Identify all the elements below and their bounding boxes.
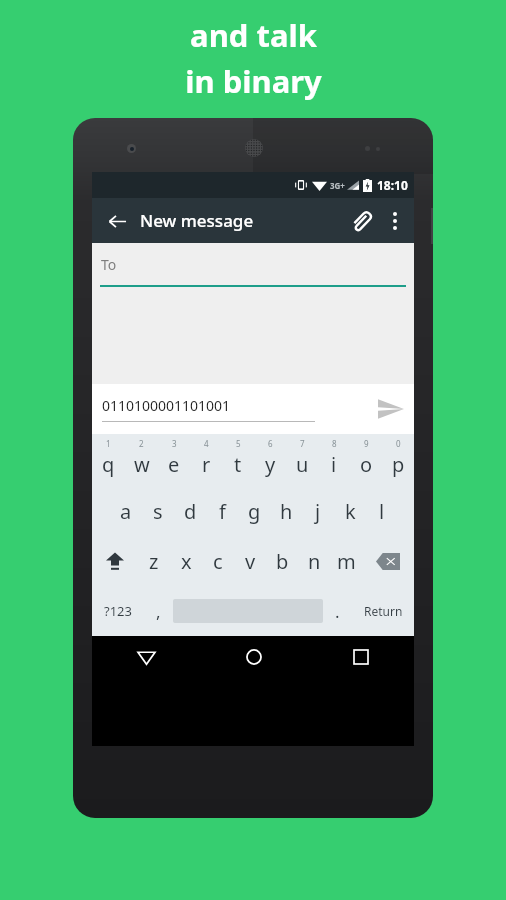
staticText: l (379, 498, 385, 525)
staticText: y (265, 451, 276, 478)
staticText: , (156, 600, 161, 623)
staticText: o (360, 451, 373, 478)
button[interactable]: x (170, 536, 202, 586)
staticText: m (337, 548, 356, 575)
staticText: 6 (268, 438, 273, 449)
staticText: f (219, 498, 226, 525)
staticText: g (248, 498, 261, 525)
staticText: j (315, 498, 321, 525)
button[interactable]: a (109, 486, 142, 536)
button[interactable]: 2 (125, 434, 158, 486)
staticText: 2 (139, 438, 144, 449)
button[interactable]: Back (92, 636, 200, 678)
staticText: 0110100001101001 (102, 396, 231, 415)
button[interactable]: d (174, 486, 206, 536)
button[interactable]: v (234, 536, 266, 586)
staticText: k (345, 498, 356, 525)
staticText: w (134, 451, 150, 478)
button[interactable]: Shift (92, 536, 138, 586)
staticText: . (335, 600, 340, 623)
staticText: t (234, 451, 242, 478)
button[interactable]: l (366, 486, 398, 536)
button[interactable]: j (302, 486, 334, 536)
staticText: e (168, 451, 180, 478)
button[interactable]: h (270, 486, 302, 536)
button[interactable]: k (334, 486, 366, 536)
button[interactable]: 4 (190, 434, 222, 486)
button[interactable]: More options (380, 204, 410, 238)
staticText: 9 (364, 438, 369, 449)
button[interactable]: Recent apps (307, 636, 414, 678)
button[interactable]: s (142, 486, 174, 536)
staticText: To (101, 255, 117, 274)
staticText: b (276, 548, 289, 575)
staticText: r (202, 451, 211, 478)
staticText: ?123 (104, 602, 132, 620)
staticText: s (153, 498, 163, 525)
button[interactable]: 6 (254, 434, 286, 486)
staticText: 4 (204, 438, 209, 449)
staticText: New message (140, 209, 254, 232)
button[interactable]: f (206, 486, 238, 536)
button[interactable]: ?123 (92, 586, 144, 636)
staticText: 8 (332, 438, 337, 449)
staticText: u (296, 451, 309, 478)
button[interactable]: 3 (158, 434, 190, 486)
button[interactable]: c (202, 536, 234, 586)
staticText: 0 (396, 438, 401, 449)
staticText: d (184, 498, 197, 525)
staticText: 5 (236, 438, 241, 449)
button[interactable]: 7 (286, 434, 318, 486)
button[interactable]: 1 (92, 434, 125, 486)
staticText: n (308, 548, 321, 575)
staticText: q (102, 451, 115, 478)
button[interactable]: Return (352, 586, 414, 636)
staticText: 3 (172, 438, 177, 449)
staticText: 1 (106, 438, 111, 449)
staticText: in binary (185, 60, 322, 102)
button[interactable]: m (330, 536, 362, 586)
button[interactable]: 9 (350, 434, 382, 486)
staticText: v (245, 548, 256, 575)
staticText: 3G+ (330, 180, 345, 191)
button[interactable]: Send (368, 386, 414, 432)
button[interactable]: z (138, 536, 170, 586)
button[interactable]: , (144, 586, 173, 636)
staticText: c (213, 548, 223, 575)
button[interactable]: Backspace (362, 536, 414, 586)
button[interactable]: Attach (342, 202, 380, 240)
button[interactable]: Home (200, 636, 307, 678)
button[interactable]: g (238, 486, 270, 536)
staticText: x (181, 548, 192, 575)
staticText: i (331, 451, 337, 478)
staticText: p (392, 451, 405, 478)
button[interactable]: b (266, 536, 298, 586)
button[interactable]: 5 (222, 434, 254, 486)
button[interactable]: n (298, 536, 330, 586)
staticText: z (149, 548, 159, 575)
staticText: and talk (190, 14, 317, 56)
button[interactable]: 8 (318, 434, 350, 486)
staticText: 7 (300, 438, 305, 449)
staticText: h (280, 498, 293, 525)
staticText: a (120, 498, 132, 525)
button[interactable]: 0 (382, 434, 414, 486)
staticText: Return (364, 603, 403, 619)
button[interactable]: . (323, 586, 352, 636)
button[interactable]: Back (100, 204, 134, 238)
staticText: 18:10 (377, 177, 408, 193)
